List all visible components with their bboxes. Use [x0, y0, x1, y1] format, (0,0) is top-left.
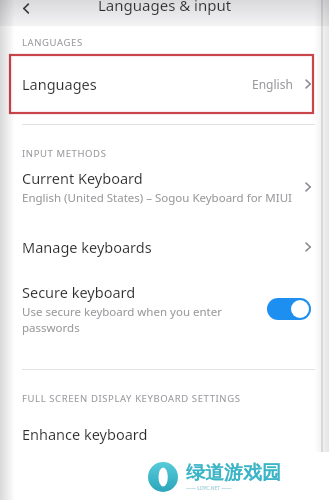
staticText: Languages	[22, 74, 97, 94]
staticText: Languages & input	[98, 0, 232, 15]
staticText: Secure keyboard	[22, 282, 136, 302]
button[interactable]: Enhance keyboard	[0, 417, 329, 451]
staticText: LANGUAGES	[22, 36, 83, 49]
button[interactable]: Secure keyboard	[0, 282, 329, 335]
staticText: Use secure keyboard when you enter passw…	[22, 304, 229, 335]
button[interactable]: Languages	[0, 55, 329, 113]
button[interactable]: Current Keyboard	[0, 168, 329, 216]
staticText: Current Keyboard	[22, 168, 143, 188]
staticText: —— LDYC.NET ——	[186, 485, 232, 492]
staticText: INPUT METHODS	[22, 147, 107, 160]
staticText: 绿道游戏园	[186, 461, 281, 485]
staticText: FULL SCREEN DISPLAY KEYBOARD SETTINGS	[22, 392, 241, 405]
staticText: Manage keyboards	[22, 237, 301, 257]
staticText: English (United States) – Sogou Keyboard…	[22, 190, 295, 206]
staticText: English	[252, 76, 293, 92]
button[interactable]: Back	[12, 0, 40, 21]
button[interactable]: Manage keyboards	[0, 230, 329, 264]
staticText: Enhance keyboard	[22, 424, 315, 444]
button[interactable]: Secure keyboard, on	[267, 298, 311, 320]
